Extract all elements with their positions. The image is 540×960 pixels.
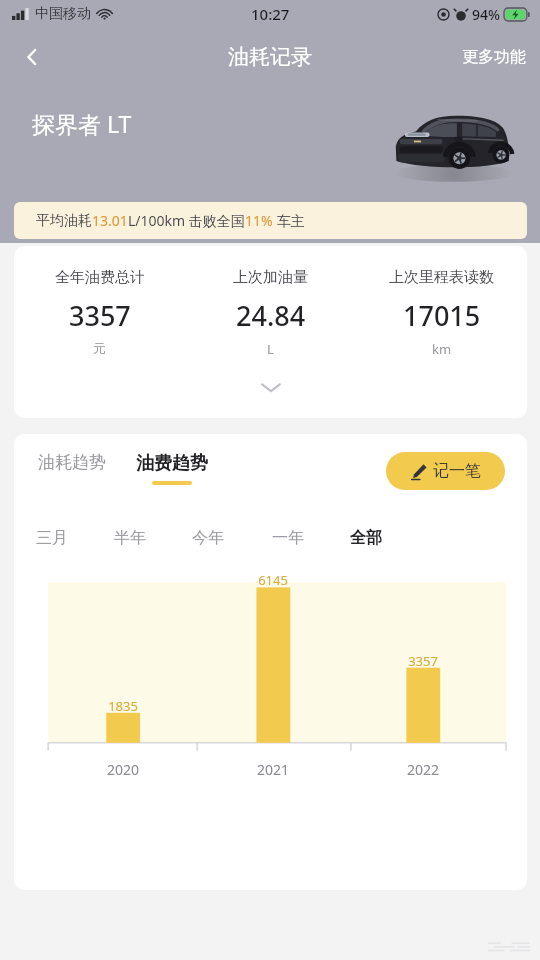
staticText: 上次加油量 bbox=[233, 268, 308, 287]
button[interactable]: 全部 bbox=[348, 524, 384, 552]
button[interactable]: 油耗趋势 bbox=[36, 452, 108, 473]
staticText: 2020 bbox=[101, 760, 145, 779]
staticText: 17015 bbox=[403, 297, 481, 334]
button[interactable]: 油费趋势 bbox=[134, 452, 210, 485]
staticText: 24.84 bbox=[236, 297, 306, 334]
staticText: 一年 bbox=[272, 528, 304, 548]
button[interactable]: Expand bbox=[248, 364, 294, 410]
staticText: 记一笔 bbox=[433, 461, 481, 481]
button[interactable]: Back bbox=[8, 33, 56, 81]
button[interactable]: 上次里程表读数 bbox=[356, 268, 527, 358]
staticText: 13.01 bbox=[92, 211, 128, 230]
button[interactable]: 一年 bbox=[270, 524, 306, 552]
staticText: 今年 bbox=[192, 528, 224, 548]
staticText: 探界者 LT bbox=[32, 108, 132, 139]
button[interactable]: 平均油耗 bbox=[14, 202, 527, 239]
staticText: 油耗记录 bbox=[228, 44, 312, 70]
button[interactable]: 三月 bbox=[34, 524, 70, 552]
staticText: 车主 bbox=[273, 211, 305, 230]
staticText: 全年油费总计 bbox=[55, 268, 145, 287]
staticText: L bbox=[267, 340, 274, 358]
button[interactable]: 全年油费总计 bbox=[14, 268, 185, 356]
button[interactable]: 上次加油量 bbox=[185, 268, 356, 358]
staticText: 11% bbox=[245, 211, 273, 230]
staticText: 2022 bbox=[401, 760, 445, 779]
staticText: 全部 bbox=[350, 528, 382, 548]
staticText: 元 bbox=[93, 340, 106, 356]
staticText: 10:27 bbox=[251, 4, 290, 24]
staticText: 94% bbox=[472, 5, 500, 24]
staticText: 更多功能 bbox=[462, 47, 526, 67]
staticText: 2021 bbox=[251, 760, 295, 779]
staticText: 3357 bbox=[69, 297, 131, 334]
staticText: km bbox=[432, 340, 452, 358]
button[interactable]: 半年 bbox=[112, 524, 148, 552]
staticText: 三月 bbox=[36, 528, 68, 548]
staticText: 6145 bbox=[254, 571, 292, 589]
staticText: 平均油耗 bbox=[36, 212, 92, 230]
button[interactable]: 更多功能 bbox=[458, 39, 530, 75]
button[interactable]: 记一笔 bbox=[386, 452, 505, 490]
button[interactable]: 今年 bbox=[190, 524, 226, 552]
staticText: 3357 bbox=[404, 652, 442, 670]
staticText: 半年 bbox=[114, 528, 146, 548]
staticText: 油耗趋势 bbox=[38, 452, 106, 473]
staticText: 油费趋势 bbox=[136, 452, 208, 475]
staticText: 上次里程表读数 bbox=[389, 268, 494, 287]
staticText: 中国移动 bbox=[35, 5, 91, 23]
staticText: 1835 bbox=[104, 697, 142, 715]
staticText: L/100km 击败全国 bbox=[128, 211, 245, 230]
